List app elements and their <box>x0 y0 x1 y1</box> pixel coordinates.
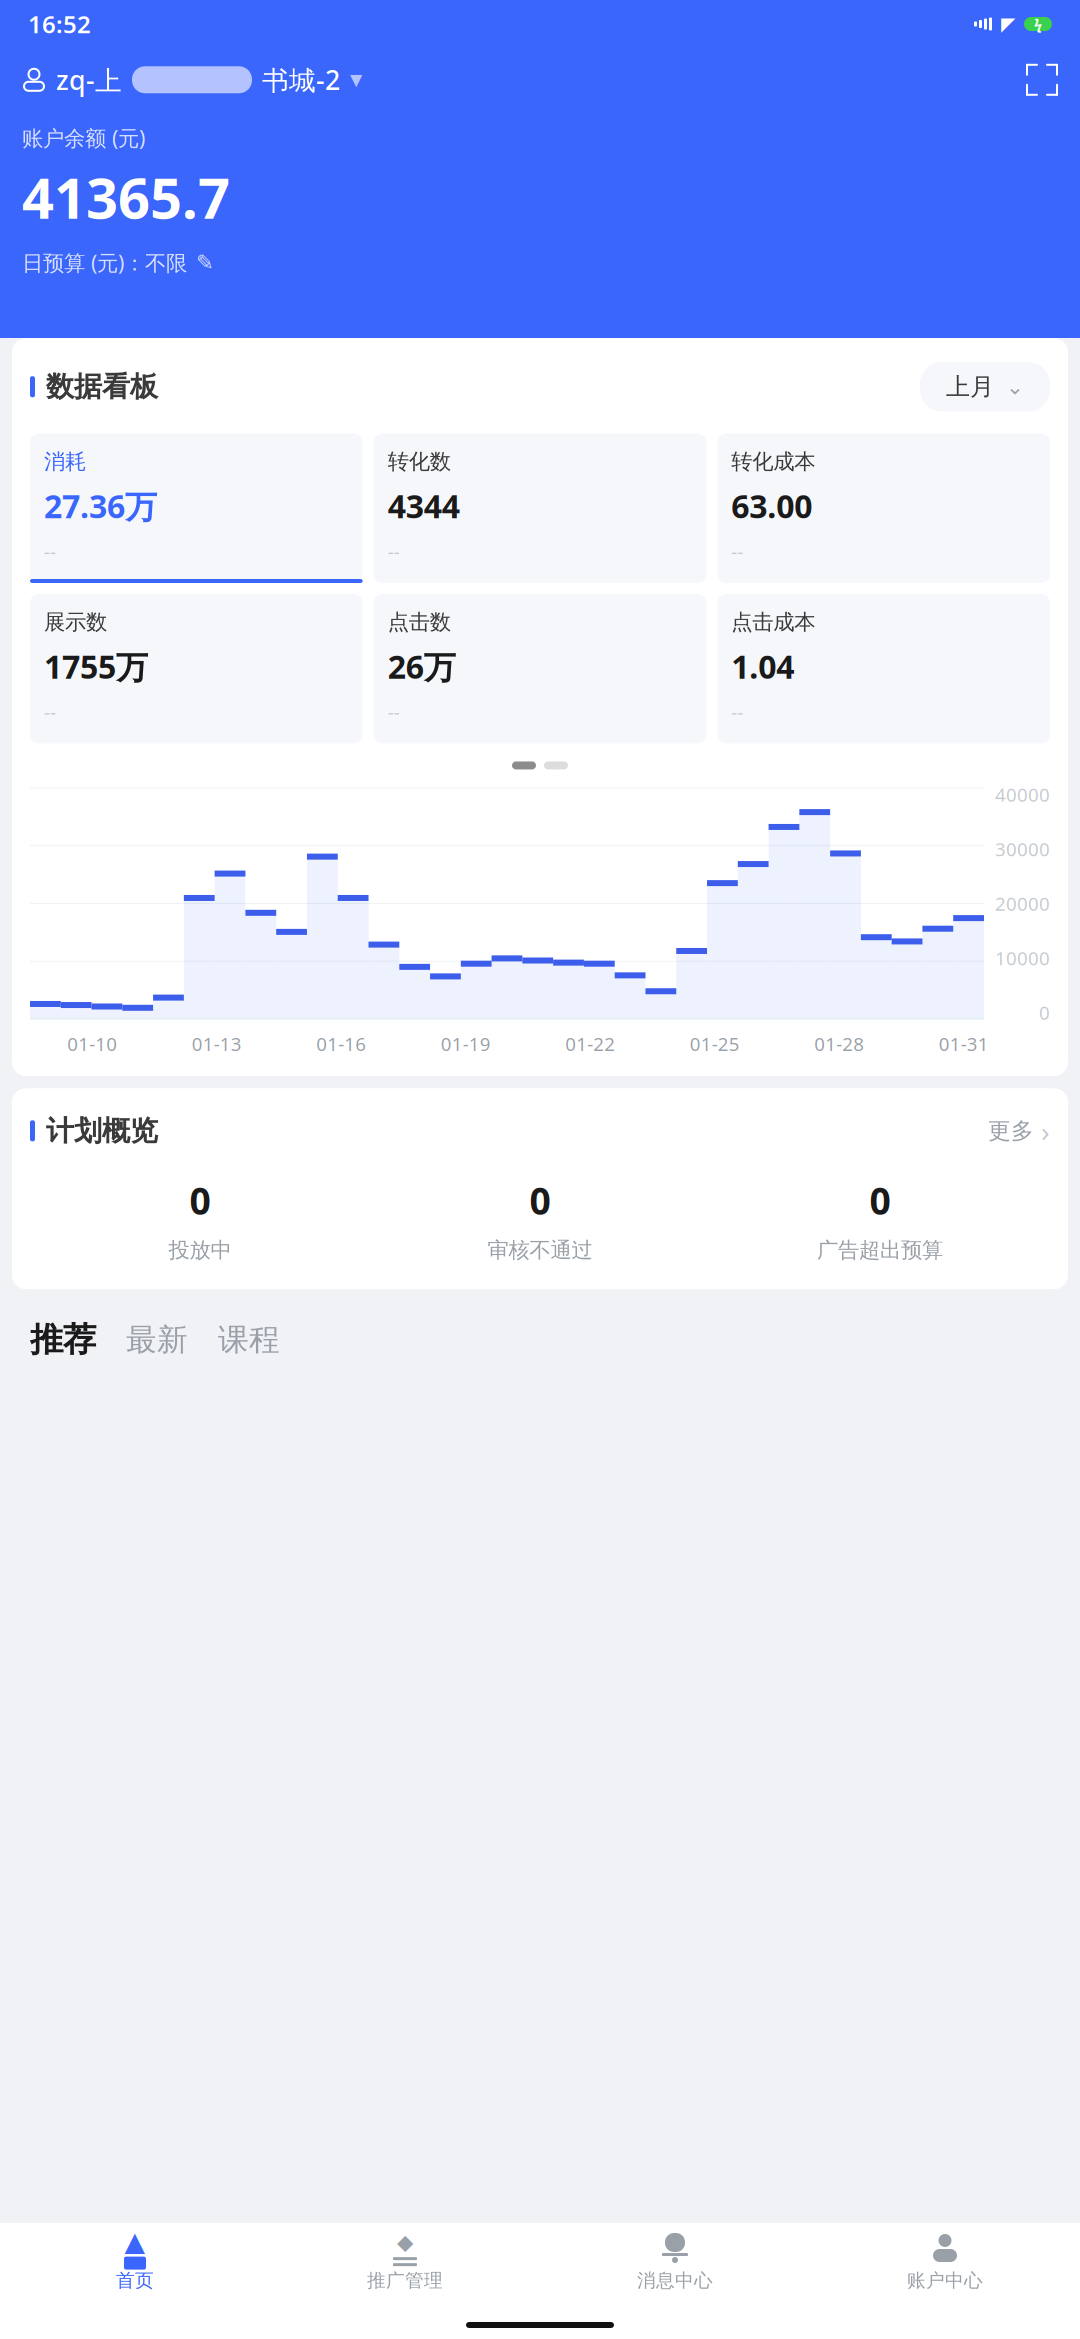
staticText: ▼ <box>350 71 362 89</box>
staticText: -- <box>731 539 743 564</box>
button[interactable]: 上月 <box>920 362 1050 411</box>
staticText: › <box>1041 1112 1050 1149</box>
staticText: -- <box>731 700 743 724</box>
staticText: 账户余额 (元) <box>22 124 145 152</box>
staticText: 首页 <box>116 2269 154 2292</box>
staticText: ✎ <box>196 250 214 274</box>
staticText: 日预算 (元)：不限 <box>22 248 187 276</box>
button[interactable]: 0 <box>710 1175 1050 1263</box>
button[interactable]: 消息中心 <box>540 2233 810 2292</box>
staticText: 广告超出预算 <box>817 1237 943 1263</box>
staticText: 展示数 <box>44 609 107 635</box>
staticText: 10000 <box>995 946 1050 970</box>
staticText: ⌄ <box>1006 375 1024 399</box>
staticText: 01-10 <box>67 1031 117 1056</box>
staticText: 0 <box>189 1175 210 1225</box>
staticText: 1.04 <box>731 645 794 688</box>
staticText: 4344 <box>388 485 460 527</box>
staticText: -- <box>44 700 56 724</box>
staticText: 更多 <box>988 1117 1034 1145</box>
staticText: 30000 <box>995 837 1050 861</box>
staticText: 41365.7 <box>22 160 230 234</box>
button[interactable]: 推荐 <box>30 1319 96 1360</box>
staticText: 01-19 <box>441 1031 491 1056</box>
staticText: ϟ <box>1034 14 1042 34</box>
staticText: 消息中心 <box>637 2269 713 2292</box>
staticText: 消耗 <box>44 448 86 475</box>
staticText: 点击成本 <box>731 609 815 635</box>
button[interactable]: 更多 <box>988 1112 1050 1149</box>
staticText: -- <box>388 700 400 724</box>
staticText: 0 <box>1039 1000 1050 1025</box>
staticText: 01-25 <box>690 1031 740 1056</box>
staticText: 上月 <box>946 372 994 401</box>
button[interactable]: 展示数 <box>30 594 363 743</box>
button[interactable]: 点击数 <box>374 594 706 743</box>
button[interactable]: 日预算 (元)：不限 <box>22 248 1058 276</box>
staticText: 0 <box>869 1175 890 1225</box>
staticText: 最新 <box>126 1321 188 1358</box>
button[interactable]: 转化成本 <box>717 433 1050 583</box>
staticText: 20000 <box>995 891 1050 916</box>
button[interactable]: 0 <box>30 1175 370 1263</box>
staticText: 1755万 <box>44 645 148 688</box>
button[interactable]: 0 <box>370 1175 710 1263</box>
button[interactable]: zq-上 <box>22 62 362 98</box>
button[interactable]: 扫一扫 <box>1026 64 1058 96</box>
staticText: 01-22 <box>565 1031 615 1056</box>
staticText: 01-28 <box>814 1031 864 1056</box>
staticText: 点击数 <box>388 609 451 635</box>
staticText: 投放中 <box>168 1237 231 1263</box>
staticText: 书城-2 <box>262 62 340 97</box>
staticText: 01-13 <box>192 1031 242 1056</box>
button[interactable]: ◆ <box>270 2233 540 2292</box>
staticText: 16:52 <box>28 8 91 40</box>
button[interactable]: ▲ <box>0 2233 270 2292</box>
staticText: 课程 <box>218 1321 280 1358</box>
staticText: 40000 <box>995 782 1050 807</box>
staticText: 计划概览 <box>46 1114 158 1148</box>
staticText: zq-上 <box>56 62 122 98</box>
button[interactable]: 转化数 <box>374 433 706 583</box>
staticText: 01-16 <box>316 1031 366 1056</box>
staticText: -- <box>388 539 400 564</box>
button[interactable]: 账户中心 <box>810 2233 1080 2292</box>
staticText: 数据看板 <box>46 369 158 404</box>
staticText: ▲ <box>124 2226 145 2257</box>
button[interactable]: 最新 <box>126 1321 188 1358</box>
staticText: 转化成本 <box>731 448 815 475</box>
button[interactable]: 点击成本 <box>717 594 1050 743</box>
staticText: 推荐 <box>30 1319 96 1360</box>
staticText: 转化数 <box>388 448 451 475</box>
staticText: 审核不通过 <box>487 1237 592 1263</box>
staticText: ◤ <box>1001 13 1015 35</box>
staticText: 0 <box>529 1175 550 1225</box>
staticText: ◆ <box>397 2230 413 2254</box>
staticText: 27.36万 <box>44 485 157 527</box>
button[interactable]: 消耗 <box>30 433 363 583</box>
staticText: -- <box>44 539 56 564</box>
button[interactable]: 课程 <box>218 1321 280 1358</box>
staticText: 63.00 <box>731 485 812 527</box>
staticText: 账户中心 <box>907 2269 983 2292</box>
staticText: 26万 <box>388 645 456 688</box>
staticText: 01-31 <box>939 1031 989 1056</box>
staticText: 推广管理 <box>367 2269 443 2292</box>
